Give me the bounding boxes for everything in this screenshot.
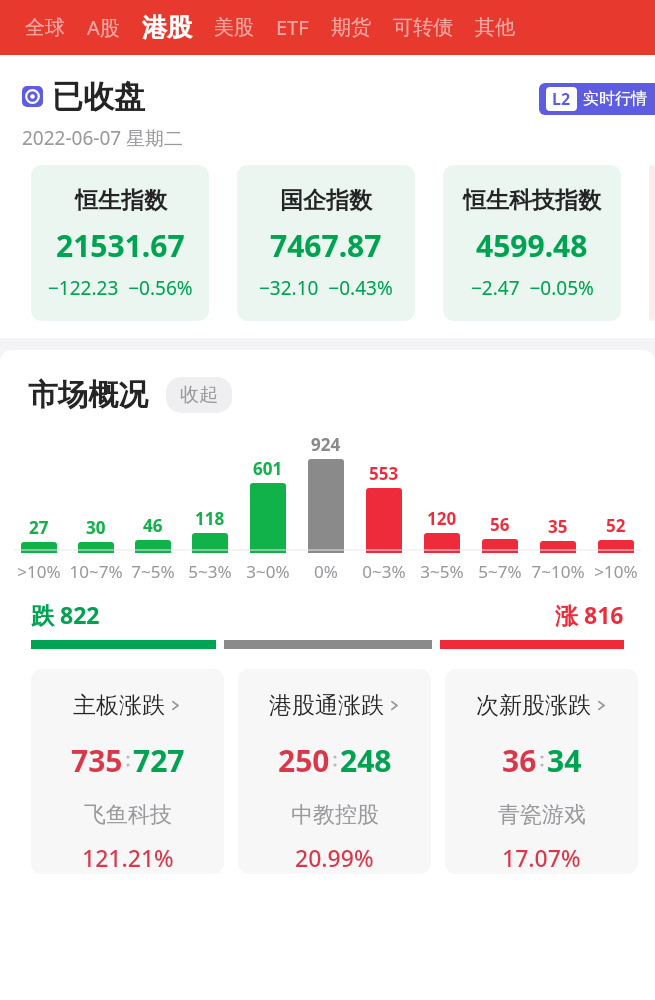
staticText: 4599.48	[476, 225, 588, 266]
button[interactable]: 美股	[203, 15, 265, 40]
staticText: >10%	[17, 560, 61, 583]
staticText: 次新股涨跌	[476, 691, 591, 720]
staticText: 3~0%	[246, 560, 290, 583]
staticText: 期货	[331, 15, 371, 40]
staticText: A股	[87, 14, 120, 41]
staticText: 其他	[475, 15, 515, 40]
staticText: 青瓷游戏	[498, 801, 586, 829]
button[interactable]: 港股	[131, 12, 203, 43]
button[interactable]: 恒生科技指数	[443, 165, 621, 321]
button[interactable]: L2	[539, 83, 655, 115]
staticText: 735	[71, 740, 123, 781]
button[interactable]: 收起	[166, 377, 232, 413]
staticText: 36	[502, 740, 537, 781]
staticText: 46	[143, 514, 163, 537]
button[interactable]: ETF	[265, 14, 320, 41]
staticText: 250	[278, 740, 330, 781]
staticText: >10%	[594, 560, 638, 583]
button[interactable]: 期货	[320, 15, 382, 40]
staticText: 21531.67	[56, 225, 185, 266]
staticText: 17.07%	[502, 842, 581, 873]
staticText: 0%	[314, 560, 338, 583]
staticText: L2	[552, 88, 571, 110]
staticText: 7467.87	[270, 225, 382, 266]
button[interactable]: 其他	[464, 15, 526, 40]
staticText: 34	[547, 740, 582, 781]
button[interactable]: 主板涨跌	[31, 669, 224, 874]
staticText: 国企指数	[280, 186, 372, 215]
staticText: 7~10%	[531, 560, 585, 583]
staticText: 5~3%	[188, 560, 232, 583]
button[interactable]: A股	[76, 14, 131, 41]
staticText: 924	[311, 433, 341, 456]
staticText: 跌 822	[31, 599, 100, 630]
staticText: 实时行情	[583, 89, 647, 109]
staticText: 553	[369, 462, 399, 485]
staticText: 恒生指数	[75, 186, 167, 215]
staticText: 248	[340, 740, 392, 781]
button[interactable]: 可转债	[382, 15, 464, 40]
staticText: 27	[29, 516, 49, 539]
staticText: 52	[606, 514, 626, 537]
staticText: 市场概况	[28, 376, 148, 414]
staticText: 118	[195, 507, 225, 530]
staticText: 港股	[142, 12, 192, 43]
staticText: 20.99%	[295, 842, 374, 873]
button[interactable]: 恒生指数	[31, 165, 209, 321]
staticText: 2022-06-07 星期二	[22, 125, 184, 151]
staticText: −32.10 −0.43%	[259, 275, 393, 301]
button[interactable]: 国企指数	[237, 165, 415, 321]
staticText: 恒生科技指数	[463, 186, 601, 215]
staticText: 30	[86, 516, 106, 539]
staticText: 35	[548, 515, 568, 538]
staticText: 可转债	[393, 15, 453, 40]
staticText: 全球	[25, 15, 65, 40]
staticText: 飞鱼科技	[84, 801, 172, 829]
staticText: 5~7%	[478, 560, 522, 583]
staticText: 美股	[214, 15, 254, 40]
staticText: 已收盘	[52, 77, 145, 116]
button[interactable]: 全球	[14, 15, 76, 40]
button[interactable]: 港股通涨跌	[238, 669, 431, 874]
staticText: 10~7%	[69, 560, 123, 583]
staticText: −2.47 −0.05%	[471, 275, 594, 301]
staticText: 中教控股	[291, 801, 379, 829]
staticText: 727	[133, 740, 185, 781]
staticText: 收起	[180, 383, 218, 407]
staticText: 601	[253, 457, 283, 480]
staticText: 7~5%	[131, 560, 175, 583]
staticText: 120	[427, 507, 457, 530]
staticText: 56	[490, 513, 510, 536]
staticText: 0~3%	[362, 560, 406, 583]
staticText: −122.23 −0.56%	[48, 275, 193, 301]
button[interactable]: 次新股涨跌	[445, 669, 638, 874]
staticText: 3~5%	[420, 560, 464, 583]
staticText: 涨 816	[555, 599, 624, 630]
staticText: 主板涨跌	[73, 691, 165, 720]
staticText: 121.21%	[82, 842, 174, 873]
staticText: 港股通涨跌	[269, 691, 384, 720]
staticText: ETF	[276, 14, 309, 41]
